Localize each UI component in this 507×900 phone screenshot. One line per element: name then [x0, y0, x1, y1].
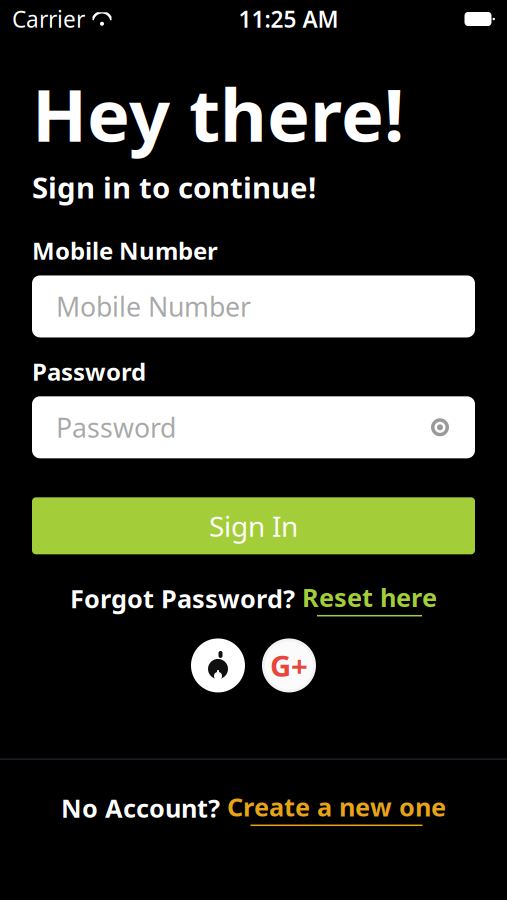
- button[interactable]: Sign In: [32, 497, 475, 554]
- staticText: Password: [32, 355, 146, 387]
- staticText: Password: [56, 410, 176, 445]
- button[interactable]: Mobile Number: [32, 275, 475, 337]
- staticText: Sign in to continue!: [32, 168, 316, 207]
- button[interactable]: Sign in with Apple: [191, 638, 245, 692]
- staticText: No Account?: [61, 791, 220, 825]
- staticText: Create a new one: [227, 790, 446, 823]
- staticText: Hey there!: [32, 66, 404, 162]
- staticText: Reset here: [302, 580, 437, 614]
- staticText: Forgot Password?: [70, 582, 295, 615]
- button[interactable]: Forgot Password?: [62, 574, 445, 622]
- staticText: Sign In: [209, 507, 298, 544]
- button[interactable]: Sign in with Google: [262, 638, 316, 692]
- button[interactable]: No Account?: [53, 782, 454, 834]
- button[interactable]: Password: [32, 396, 475, 458]
- staticText: G+: [270, 646, 308, 685]
- staticText: Mobile Number: [56, 289, 251, 324]
- staticText: Carrier: [12, 4, 85, 34]
- staticText: Mobile Number: [32, 235, 218, 266]
- staticText: 11:25 AM: [238, 4, 338, 34]
